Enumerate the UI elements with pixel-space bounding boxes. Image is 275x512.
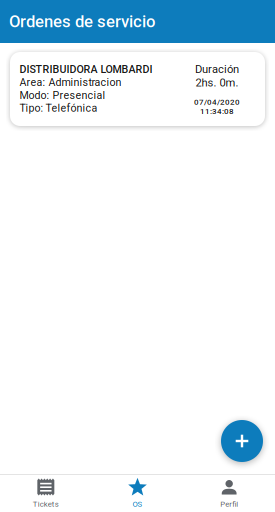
staticText: 07/04/2020 bbox=[194, 97, 240, 107]
staticText: OS bbox=[132, 500, 142, 509]
staticText: Modo: Presencial bbox=[19, 89, 105, 101]
staticText: Ordenes de servicio bbox=[9, 12, 155, 31]
staticText: Duración bbox=[195, 63, 239, 76]
button[interactable]: Tickets bbox=[0, 475, 92, 512]
button[interactable]: Perfil bbox=[183, 475, 275, 512]
staticText: 11:34:08 bbox=[200, 106, 234, 116]
staticText: Tipo: Telefónica bbox=[19, 102, 97, 114]
button[interactable]: Nueva orden de servicio bbox=[221, 420, 263, 462]
staticText: DISTRIBUIDORA LOMBARDI bbox=[19, 63, 152, 76]
button[interactable]: OS bbox=[92, 475, 183, 512]
staticText: Area: Administracion bbox=[19, 76, 121, 89]
staticText: Tickets bbox=[33, 500, 59, 509]
staticText: Perfil bbox=[220, 500, 238, 509]
staticText: 2hs. 0m. bbox=[195, 76, 238, 89]
